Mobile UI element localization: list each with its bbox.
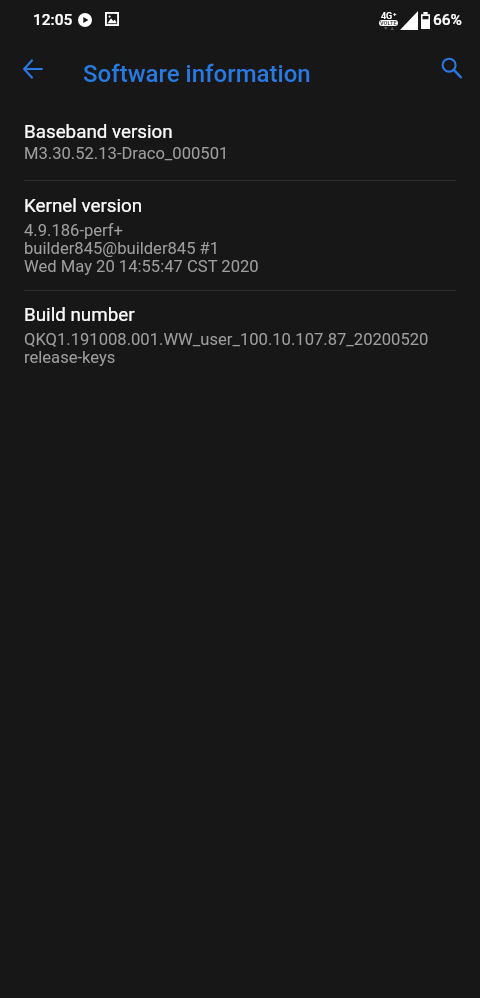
staticText: 4.9.186-perf+ bbox=[24, 221, 124, 240]
staticText: Software information bbox=[83, 60, 311, 88]
staticText: builder845@builder845 #1 bbox=[24, 239, 220, 258]
button[interactable] bbox=[0, 104, 480, 180]
button[interactable]: Back bbox=[0, 40, 64, 104]
staticText: + bbox=[393, 10, 397, 17]
staticText: 12:05 bbox=[33, 11, 73, 29]
staticText: release-keys bbox=[24, 348, 116, 367]
staticText: 4G bbox=[381, 11, 393, 22]
staticText: Wed May 20 14:55:47 CST 2020 bbox=[24, 257, 259, 276]
button[interactable] bbox=[0, 291, 480, 380]
staticText: VOLTE bbox=[380, 20, 397, 26]
staticText: Kernel version bbox=[24, 195, 143, 217]
staticText: Build number bbox=[24, 304, 135, 326]
staticText: Baseband version bbox=[24, 121, 173, 143]
button[interactable] bbox=[0, 181, 480, 290]
staticText: 66% bbox=[433, 11, 463, 29]
button[interactable]: Search bbox=[423, 40, 480, 104]
staticText: M3.30.52.13-Draco_000501 bbox=[24, 144, 229, 163]
staticText: QKQ1.191008.001.WW_user_100.10.107.87_20… bbox=[24, 330, 429, 349]
